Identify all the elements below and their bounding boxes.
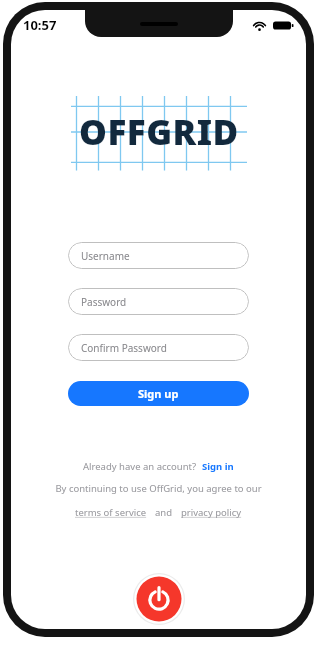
button[interactable]: Already have an account?: [83, 460, 234, 473]
button[interactable]: Username: [68, 242, 249, 269]
staticText: Password: [81, 295, 127, 309]
button[interactable]: Confirm Password: [68, 334, 249, 361]
staticText: and: [155, 506, 173, 519]
button[interactable]: Power: [133, 573, 185, 625]
staticText: OFFGRID: [79, 108, 239, 156]
staticText: Username: [81, 249, 130, 263]
staticText: Sign up: [138, 386, 179, 401]
staticText: privacy policy: [181, 506, 242, 519]
button[interactable]: Password: [68, 288, 249, 315]
staticText: Confirm Password: [81, 341, 167, 355]
staticText: Already have an account?: [83, 460, 197, 473]
button[interactable]: Sign up: [68, 381, 249, 406]
staticText: 10:57: [23, 16, 57, 34]
staticText: By continuing to use OffGrid, you agree …: [55, 482, 262, 495]
staticText: terms of service: [75, 506, 147, 519]
button[interactable]: terms of service: [75, 506, 147, 519]
staticText: Sign in: [202, 460, 234, 473]
button[interactable]: privacy policy: [181, 506, 242, 519]
